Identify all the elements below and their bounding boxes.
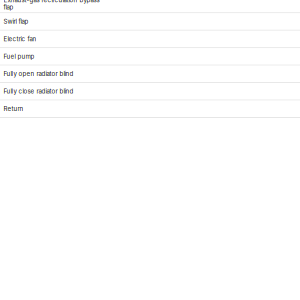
staticText: Fully open radiator blind [4, 70, 74, 78]
staticText: Electric fan [4, 35, 37, 43]
button[interactable]: Fully open radiator blind [0, 66, 300, 83]
button[interactable]: Swirl flap [0, 13, 300, 31]
button[interactable]: Fuel pump [0, 48, 300, 66]
staticText: Swirl flap [4, 18, 29, 25]
staticText: Fully close radiator blind [4, 88, 74, 95]
button[interactable]: Return [0, 101, 300, 118]
staticText: Return [4, 105, 24, 112]
button[interactable]: Electric fan [0, 31, 300, 48]
staticText: Fuel pump [4, 53, 35, 60]
button[interactable]: Exhaust-gas recirculation bypass flap [0, 0, 300, 13]
button[interactable]: Fully close radiator blind [0, 83, 300, 100]
staticText: Exhaust-gas recirculation bypass flap [4, 0, 100, 11]
